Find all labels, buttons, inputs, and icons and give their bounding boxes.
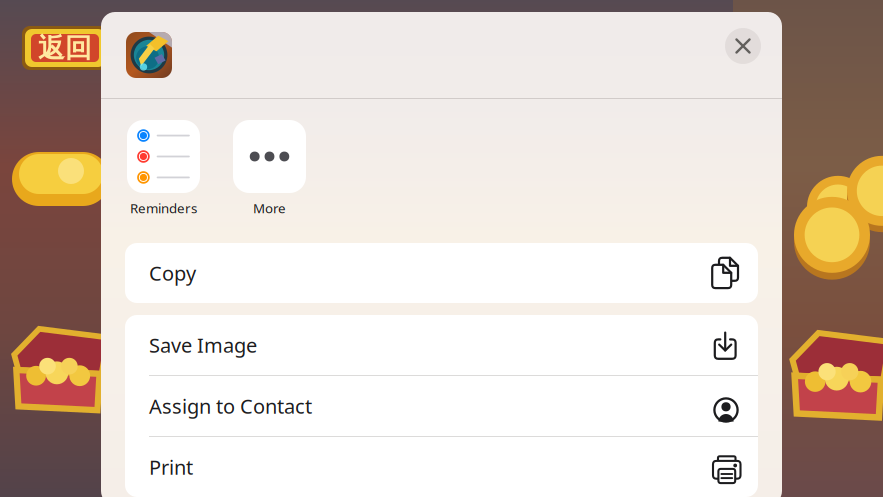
staticText: More	[253, 199, 286, 217]
button[interactable]: More	[233, 120, 306, 225]
button[interactable]: Print	[125, 437, 758, 497]
staticText: Save Image	[149, 332, 257, 358]
button[interactable]: Assign to Contact	[125, 376, 758, 436]
staticText: Assign to Contact	[149, 393, 312, 419]
button[interactable]: Close	[725, 28, 761, 64]
staticText: 返回	[38, 32, 92, 64]
button[interactable]: Back	[22, 26, 108, 70]
button[interactable]: Copy	[125, 243, 758, 303]
staticText: Copy	[149, 260, 196, 286]
button[interactable]: Save Image	[125, 315, 758, 375]
staticText: Reminders	[130, 199, 197, 217]
button[interactable]: Reminders	[127, 120, 200, 225]
staticText: Print	[149, 454, 193, 480]
